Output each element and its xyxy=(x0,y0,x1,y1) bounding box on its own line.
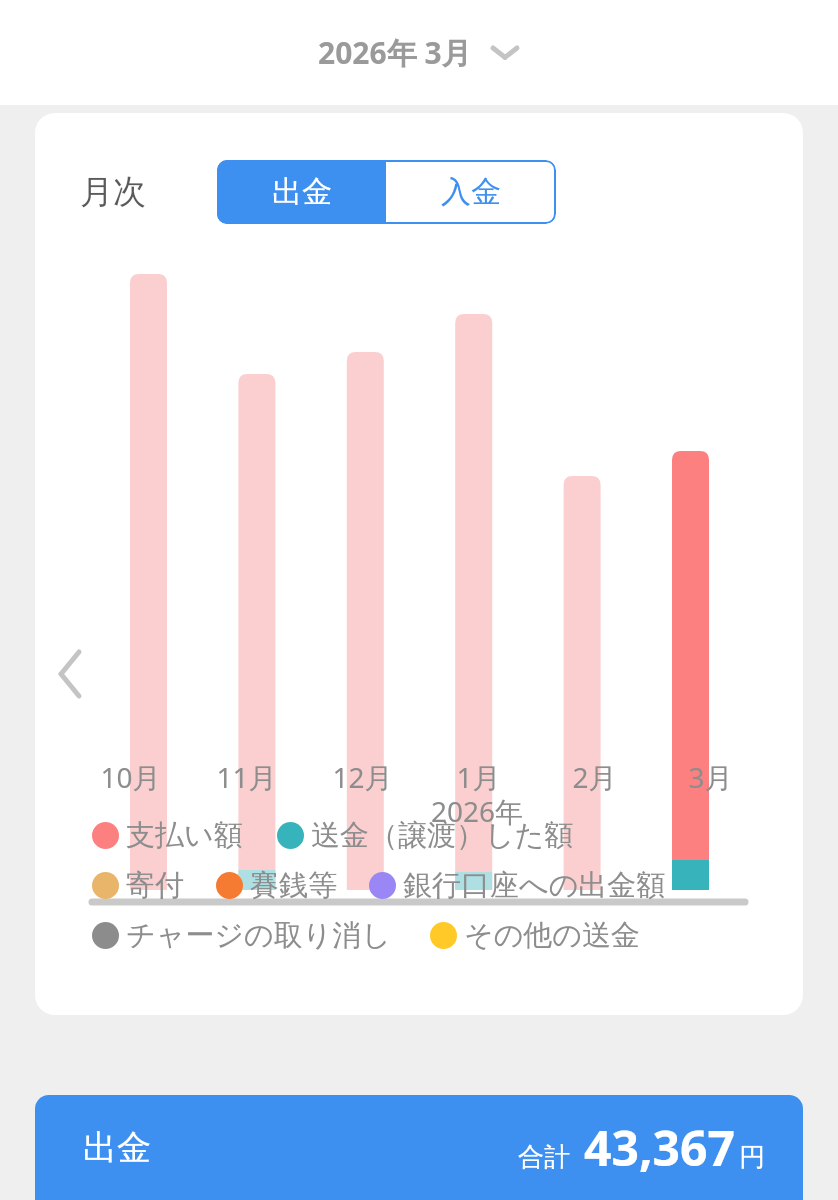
staticText: 12月 xyxy=(332,758,393,796)
staticText: 10月 xyxy=(100,758,161,796)
staticText: 2026年 3月 xyxy=(318,32,472,73)
button[interactable]: 出金 xyxy=(217,160,386,224)
staticText: 出金 xyxy=(272,173,332,211)
staticText: 2月 xyxy=(572,758,617,796)
staticText: 賽銭等 xyxy=(250,867,337,904)
staticText: 円 xyxy=(739,1141,765,1174)
staticText: 3月 xyxy=(688,758,733,796)
button[interactable]: 入金 xyxy=(386,160,556,224)
staticText: 1月 xyxy=(456,758,501,796)
staticText: 支払い額 xyxy=(126,817,243,854)
staticText: 月次 xyxy=(80,171,146,213)
staticText: 2026年 xyxy=(431,792,524,830)
staticText: 銀行口座への出金額 xyxy=(403,867,666,904)
staticText: その他の送金 xyxy=(464,917,641,954)
other: Select month xyxy=(490,43,520,63)
staticText: 入金 xyxy=(441,173,501,211)
staticText: チャージの取り消し xyxy=(126,917,392,954)
staticText: 寄付 xyxy=(126,867,184,904)
staticText: 43,367 xyxy=(584,1115,735,1180)
staticText: 出金 xyxy=(83,1126,151,1169)
staticText: 合計 xyxy=(518,1141,570,1174)
button[interactable]: 2026年 3月 xyxy=(306,26,532,79)
staticText: 11月 xyxy=(216,758,277,796)
staticText: 送金（譲渡）した額 xyxy=(311,817,574,854)
button[interactable]: 出金 xyxy=(35,1095,803,1200)
